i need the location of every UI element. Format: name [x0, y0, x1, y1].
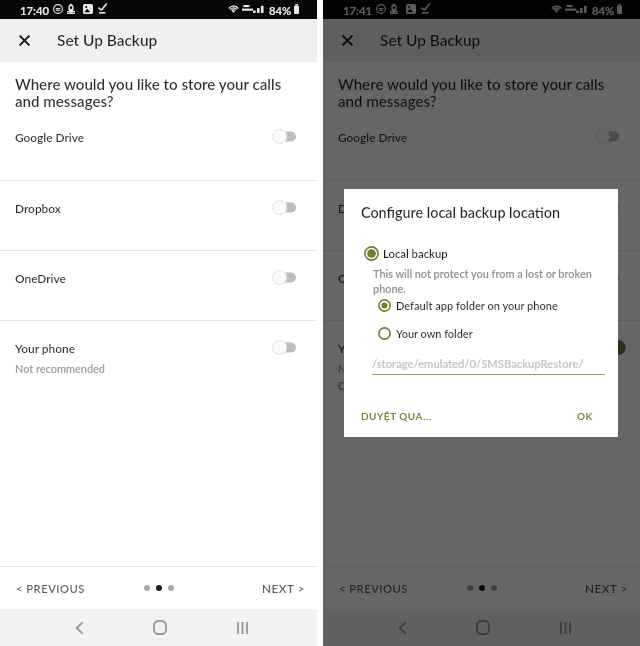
button[interactable]: Dropbox — [323, 181, 640, 250]
staticText: DUYỆT QUA... — [361, 410, 432, 422]
staticText: OneDrive — [15, 271, 66, 285]
button[interactable]: Google Drive — [323, 110, 640, 180]
button[interactable]: Toggle — [272, 200, 296, 215]
staticText: Dropbox — [15, 201, 61, 215]
button[interactable]: Default app folder on your phone — [378, 299, 558, 312]
staticText: 17:40 — [20, 4, 50, 18]
button[interactable]: Your phone — [323, 321, 640, 390]
button[interactable]: Recents — [218, 609, 266, 646]
button[interactable]: Dropbox — [0, 181, 317, 250]
button[interactable]: NEXT > — [575, 567, 639, 609]
button[interactable]: Your own folder — [378, 327, 473, 340]
staticText: This will not protect you from a lost or… — [373, 267, 592, 295]
button[interactable]: Recents — [541, 609, 589, 646]
button[interactable]: Close — [3, 19, 46, 62]
staticText: Your own folder — [396, 327, 473, 340]
staticText: NEXT > — [585, 581, 629, 595]
button[interactable]: Google Drive — [0, 110, 317, 180]
button[interactable]: Home — [136, 609, 184, 646]
staticText: Your phone — [15, 341, 75, 355]
button[interactable]: Home — [459, 609, 507, 646]
button[interactable]: Toggle — [272, 340, 296, 355]
staticText: 84% — [269, 4, 292, 18]
button[interactable]: Toggle — [595, 129, 619, 144]
staticText: Choose folder — [338, 379, 406, 392]
button[interactable]: Back — [378, 609, 426, 646]
staticText: < PREVIOUS — [339, 582, 408, 595]
staticText: Configure local backup location — [361, 204, 561, 221]
staticText: NEXT > — [262, 581, 306, 595]
staticText: 84% — [592, 4, 615, 18]
button[interactable]: < PREVIOUS — [6, 567, 95, 609]
staticText: Google Drive — [15, 130, 85, 144]
staticText: Set Up Backup — [57, 31, 158, 50]
staticText: OK — [577, 410, 593, 422]
staticText: OneDrive — [338, 271, 389, 285]
button[interactable]: OK — [570, 401, 600, 431]
staticText: Dropbox — [338, 201, 384, 215]
staticText: Not recommended — [15, 362, 106, 375]
button[interactable]: < PREVIOUS — [329, 567, 418, 609]
staticText: Local backup — [383, 247, 448, 261]
button[interactable]: Toggle — [272, 129, 296, 144]
button[interactable]: Back — [55, 609, 103, 646]
staticText: Where would you like to store your calls… — [15, 75, 282, 110]
button[interactable]: Local backup — [364, 246, 448, 261]
button[interactable]: OneDrive — [323, 251, 640, 320]
staticText: Where would you like to store your calls… — [338, 75, 605, 110]
staticText: Your phone — [338, 341, 398, 355]
staticText: /storage/emulated/0/SMSBackupRestore/ — [372, 357, 584, 370]
staticText: Default app folder on your phone — [396, 299, 558, 312]
button[interactable]: DUYỆT QUA... — [354, 401, 439, 431]
button[interactable]: Toggle — [595, 340, 619, 355]
staticText: 17:41 — [343, 4, 373, 18]
staticText: Not recommended — [338, 362, 429, 375]
button[interactable]: Close — [326, 19, 369, 62]
button[interactable]: Toggle — [272, 270, 296, 285]
button[interactable]: OneDrive — [0, 251, 317, 320]
button[interactable]: NEXT > — [252, 567, 316, 609]
staticText: < PREVIOUS — [16, 582, 85, 595]
button[interactable]: Your phone — [0, 321, 317, 390]
button[interactable]: Toggle — [595, 270, 619, 285]
staticText: Set Up Backup — [380, 31, 481, 50]
staticText: Google Drive — [338, 130, 408, 144]
button[interactable]: Toggle — [595, 200, 619, 215]
